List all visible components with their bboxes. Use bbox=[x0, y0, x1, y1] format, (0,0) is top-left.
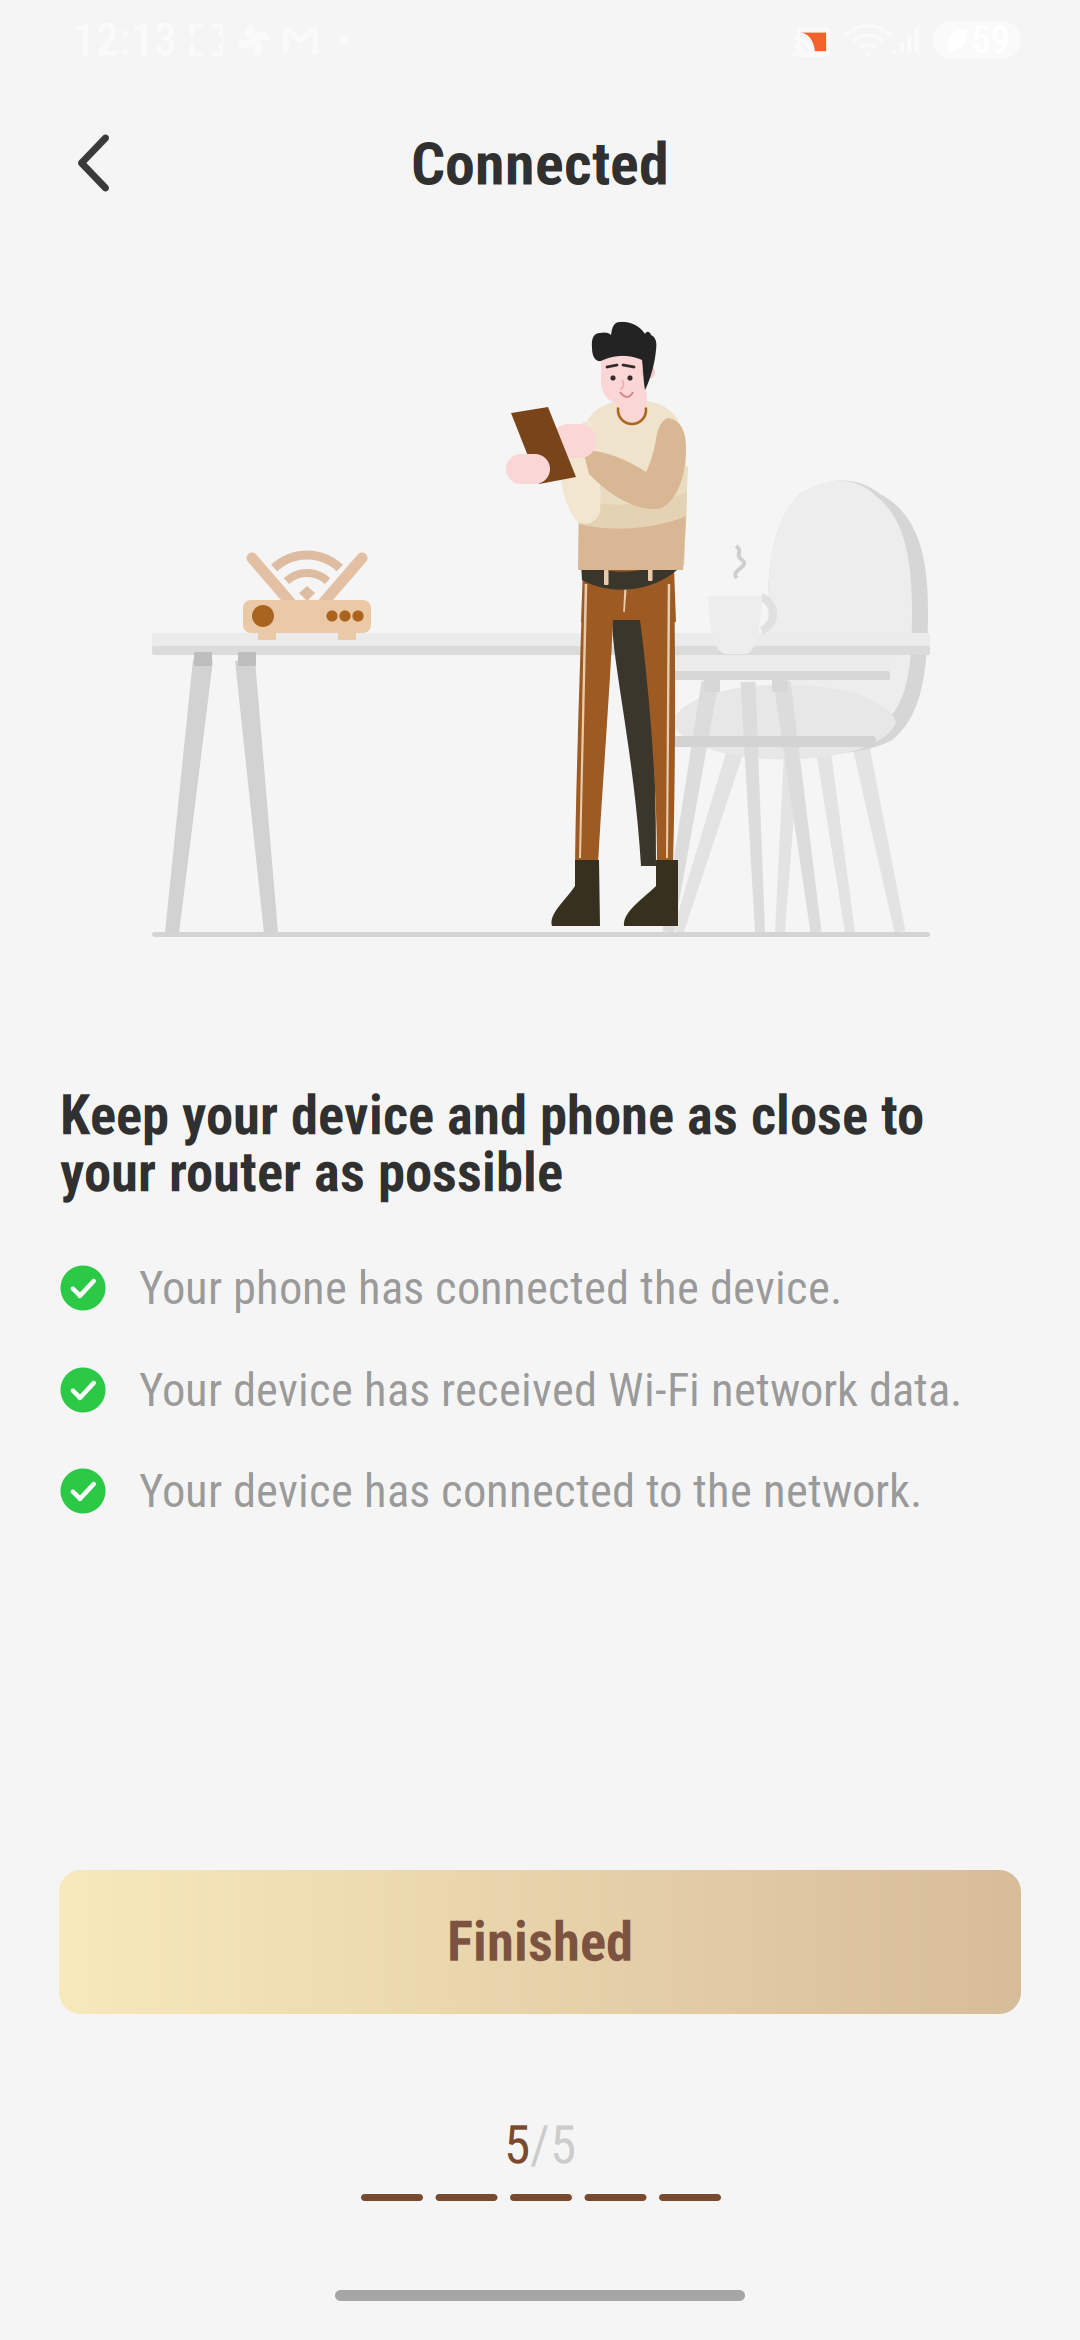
staticText: Keep your device and phone as close to y… bbox=[60, 1083, 924, 1204]
staticText: Your device has connected to the network… bbox=[139, 1464, 922, 1518]
staticText: 59 bbox=[971, 17, 1009, 63]
staticText: Finished bbox=[447, 1910, 633, 1974]
staticText: 5 bbox=[504, 2114, 530, 2176]
button[interactable]: Back bbox=[48, 104, 139, 221]
staticText: Connected bbox=[411, 129, 669, 199]
staticText: Your device has received Wi-Fi network d… bbox=[139, 1363, 962, 1417]
staticText: /5 bbox=[530, 2114, 576, 2176]
button[interactable]: Finished bbox=[59, 1870, 1021, 2014]
staticText: Your phone has connected the device. bbox=[139, 1261, 842, 1315]
